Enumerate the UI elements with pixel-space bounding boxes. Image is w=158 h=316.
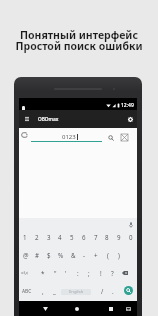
- staticText: :: [77, 269, 79, 277]
- staticText: 5: [70, 233, 74, 241]
- staticText: .: [112, 287, 114, 295]
- button[interactable]: English: [61, 289, 91, 295]
- staticText: Понятный интерфейс Простой поиск ошибки: [0, 28, 158, 54]
- button[interactable]: &: [67, 246, 79, 264]
- button[interactable]: -: [78, 246, 90, 264]
- staticText: (: [107, 251, 109, 259]
- button[interactable]: /: [96, 282, 108, 300]
- button[interactable]: @: [20, 246, 32, 264]
- staticText: ': [65, 269, 67, 277]
- staticText: ,: [42, 287, 44, 295]
- button[interactable]: #: [31, 246, 43, 264]
- button[interactable]: Backspace: [120, 269, 130, 277]
- button[interactable]: Voice input: [126, 220, 135, 229]
- button[interactable]: 0123: [31, 131, 102, 142]
- button[interactable]: 4: [54, 228, 66, 246]
- staticText: 12:49: [121, 102, 134, 109]
- button[interactable]: ': [60, 264, 72, 282]
- button[interactable]: %: [55, 246, 67, 264]
- button[interactable]: ": [49, 264, 61, 282]
- button[interactable]: +: [90, 246, 102, 264]
- button[interactable]: ;: [83, 264, 95, 282]
- staticText: 9: [117, 233, 121, 241]
- button[interactable]: :: [72, 264, 84, 282]
- staticText: *: [41, 269, 45, 277]
- button[interactable]: _: [48, 282, 60, 300]
- staticText: @: [23, 251, 29, 259]
- button[interactable]: .: [107, 282, 119, 300]
- staticText: _: [53, 287, 56, 295]
- button[interactable]: Back: [39, 301, 51, 316]
- staticText: /: [101, 287, 104, 295]
- staticText: %: [58, 251, 64, 259]
- button[interactable]: Open navigation menu: [18, 110, 36, 128]
- button[interactable]: 5: [66, 228, 78, 246]
- staticText: English: [69, 289, 84, 295]
- staticText: 0: [129, 233, 133, 241]
- staticText: 4: [58, 233, 62, 241]
- staticText: =\<: [21, 270, 29, 277]
- staticText: 0123: [62, 133, 76, 141]
- staticText: 8: [105, 233, 109, 241]
- staticText: ): [118, 251, 120, 259]
- staticText: ABC: [22, 288, 32, 295]
- button[interactable]: *: [37, 264, 49, 282]
- button[interactable]: Search: [104, 131, 117, 144]
- staticText: #: [35, 251, 39, 259]
- staticText: 3: [47, 233, 51, 241]
- button[interactable]: 0: [125, 228, 137, 246]
- button[interactable]: =\<: [19, 264, 31, 282]
- staticText: OBDmax: [38, 116, 59, 123]
- staticText: !: [100, 269, 102, 277]
- button[interactable]: Recent apps: [105, 301, 117, 316]
- button[interactable]: Switch keyboard: [122, 301, 134, 316]
- button[interactable]: 1: [19, 228, 31, 246]
- button[interactable]: 7: [90, 228, 102, 246]
- button[interactable]: 8: [101, 228, 113, 246]
- staticText: ?: [111, 269, 114, 277]
- staticText: 7: [94, 233, 98, 241]
- button[interactable]: Home: [71, 301, 83, 316]
- button[interactable]: ?: [106, 264, 118, 282]
- button[interactable]: Settings: [123, 110, 137, 128]
- staticText: ": [54, 269, 57, 277]
- button[interactable]: 9: [113, 228, 125, 246]
- button[interactable]: Bluetooth scan: [118, 131, 131, 144]
- button[interactable]: 3: [43, 228, 55, 246]
- button[interactable]: $: [43, 246, 55, 264]
- button[interactable]: (: [102, 246, 114, 264]
- button[interactable]: ): [113, 246, 125, 264]
- button[interactable]: !: [95, 264, 107, 282]
- button[interactable]: Refresh: [21, 132, 28, 138]
- staticText: +: [94, 251, 98, 259]
- staticText: ;: [88, 269, 90, 277]
- button[interactable]: 2: [31, 228, 43, 246]
- staticText: 1: [23, 233, 27, 241]
- button[interactable]: ABC: [21, 282, 33, 300]
- button[interactable]: Search: [124, 286, 133, 295]
- staticText: -: [83, 251, 85, 259]
- button[interactable]: ,: [37, 282, 49, 300]
- staticText: 2: [35, 233, 39, 241]
- staticText: $: [47, 251, 51, 259]
- staticText: 6: [82, 233, 86, 241]
- button[interactable]: 6: [78, 228, 90, 246]
- staticText: &: [71, 251, 76, 259]
